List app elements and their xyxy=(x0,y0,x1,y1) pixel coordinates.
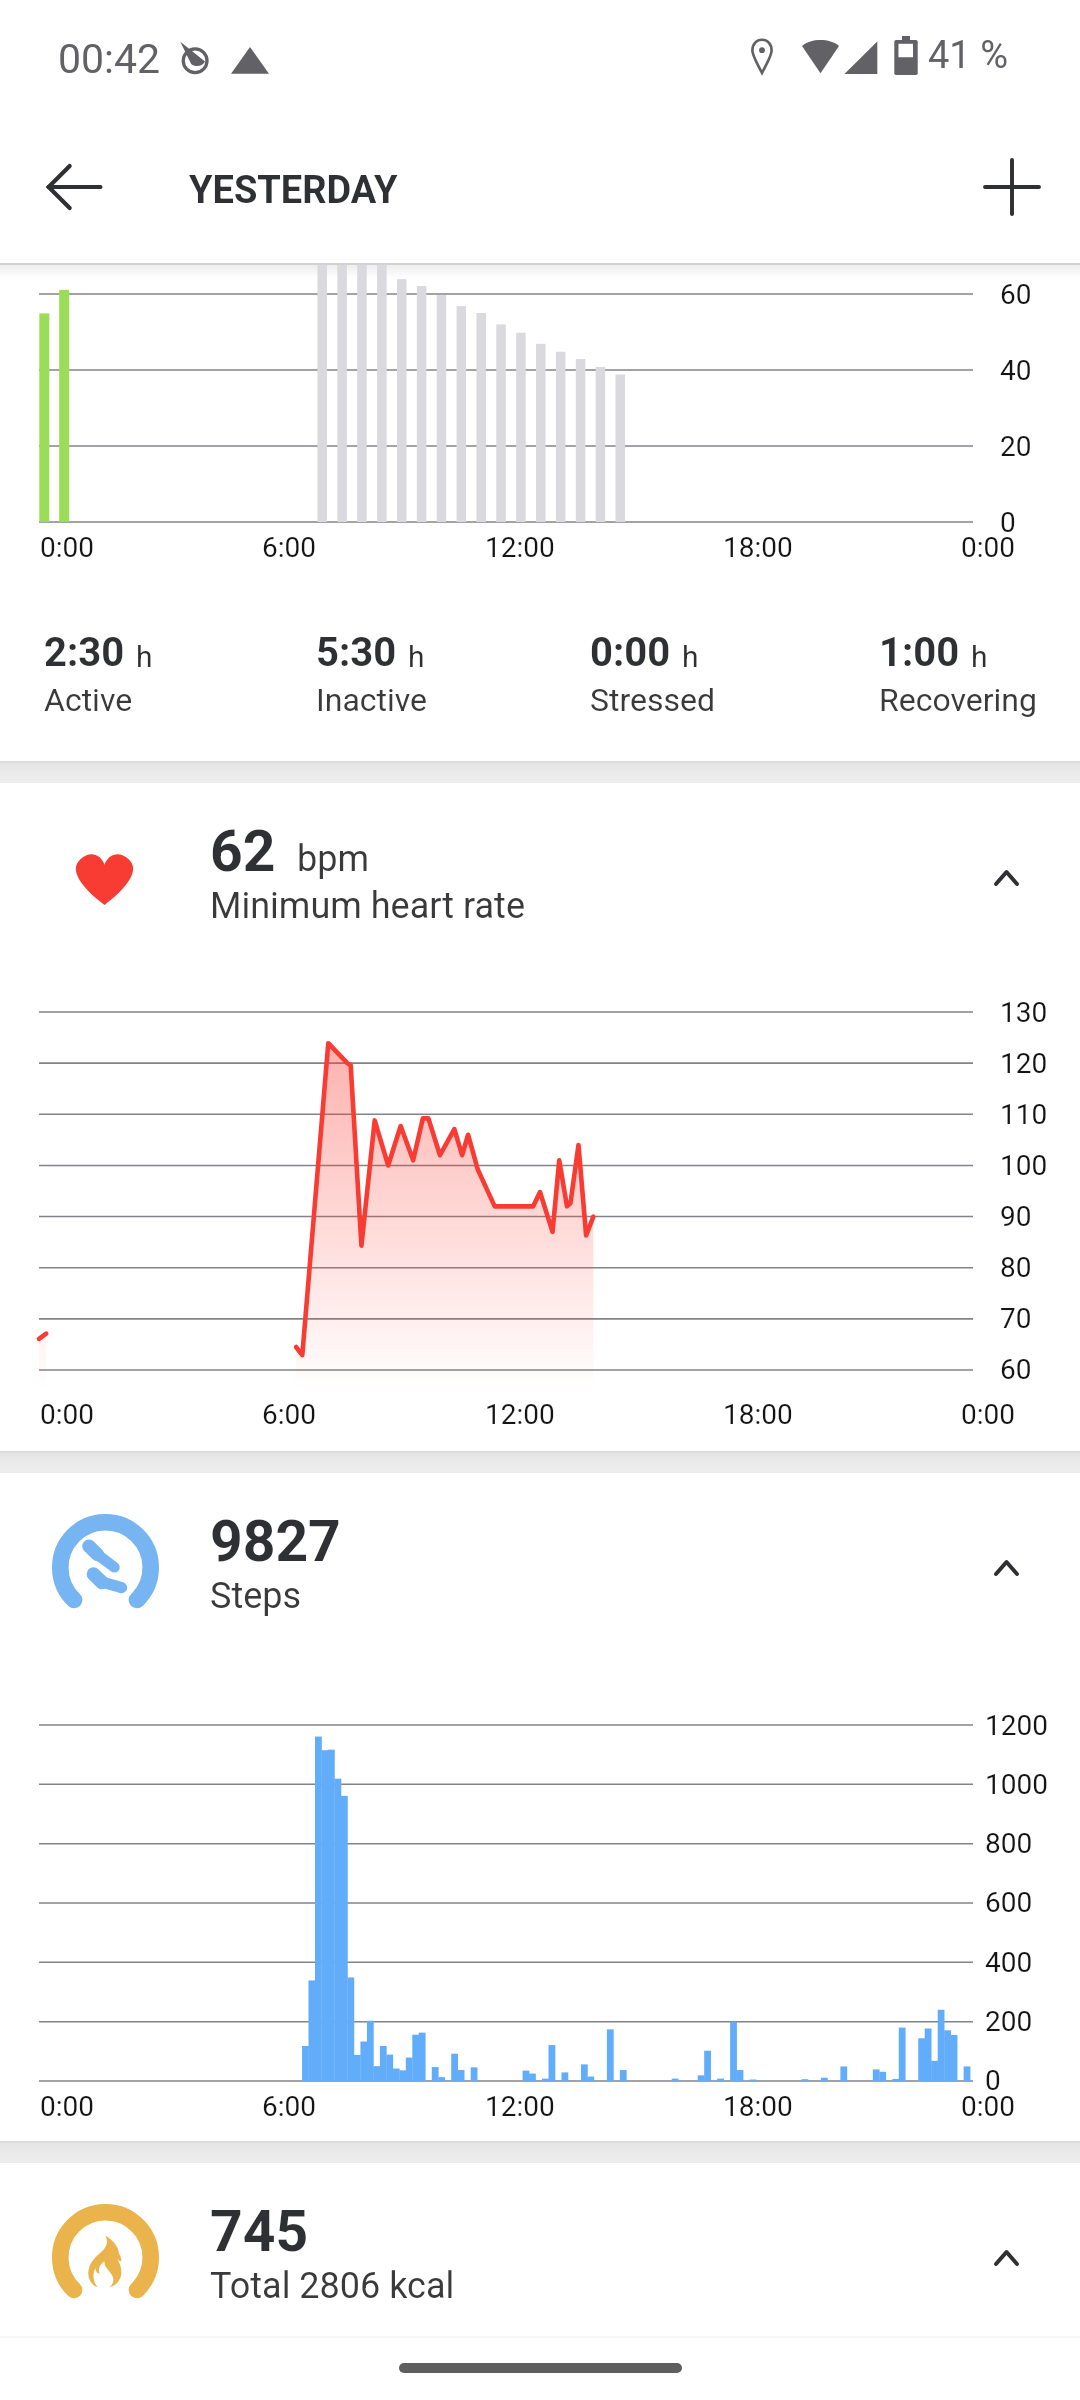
staticText: 120 xyxy=(1000,1047,1048,1080)
staticText: Steps xyxy=(210,1575,302,1617)
staticText: 600 xyxy=(985,1886,1033,1919)
staticText: 0:00 xyxy=(961,531,1015,564)
staticText: 200 xyxy=(985,2005,1033,2038)
staticText: 745 xyxy=(210,2198,309,2265)
staticText: Active xyxy=(44,681,133,719)
staticText: 1200 xyxy=(985,1709,1048,1742)
staticText: 18:00 xyxy=(723,531,793,564)
staticText: 100 xyxy=(1000,1149,1048,1182)
staticText: Recovering xyxy=(879,681,1037,719)
staticText: 2:30 xyxy=(44,629,125,676)
staticText: 70 xyxy=(1000,1302,1032,1335)
button[interactable]: 745 xyxy=(0,2163,1080,2323)
staticText: 400 xyxy=(985,1946,1033,1979)
staticText: h xyxy=(971,639,988,674)
button[interactable]: 62 xyxy=(0,783,1080,943)
staticText: 60 xyxy=(1000,278,1032,311)
staticText: 6:00 xyxy=(262,1398,316,1431)
staticText: 20 xyxy=(1000,430,1032,463)
staticText: YESTERDAY xyxy=(189,168,398,213)
staticText: 0:00 xyxy=(40,1398,94,1431)
staticText: 0:00 xyxy=(961,1398,1015,1431)
staticText: 110 xyxy=(1000,1098,1048,1131)
staticText: 41 % xyxy=(928,33,1008,78)
staticText: 0 xyxy=(985,2064,1001,2097)
staticText: 130 xyxy=(1000,996,1048,1029)
staticText: 62 xyxy=(210,818,276,885)
staticText: Stressed xyxy=(590,681,716,719)
staticText: 0 xyxy=(1000,506,1016,539)
button[interactable]: 9827 xyxy=(0,1473,1080,1633)
button[interactable]: 0:00 xyxy=(590,629,716,719)
button[interactable]: Back xyxy=(22,135,126,239)
staticText: 80 xyxy=(1000,1251,1032,1284)
button[interactable]: Collapse xyxy=(962,2215,1052,2287)
staticText: 12:00 xyxy=(485,531,555,564)
staticText: 0:00 xyxy=(590,629,671,676)
staticText: 60 xyxy=(1000,1353,1032,1386)
staticText: h xyxy=(136,639,153,674)
staticText: 18:00 xyxy=(723,2090,793,2123)
staticText: 40 xyxy=(1000,354,1032,387)
staticText: 9827 xyxy=(210,1508,341,1575)
staticText: Inactive xyxy=(316,681,428,719)
button[interactable]: 1:00 xyxy=(879,629,1037,719)
staticText: 1:00 xyxy=(879,629,960,676)
staticText: 800 xyxy=(985,1827,1033,1860)
button[interactable]: Collapse xyxy=(962,835,1052,907)
staticText: 00:42 xyxy=(58,35,161,83)
staticText: 12:00 xyxy=(485,1398,555,1431)
staticText: h xyxy=(408,639,425,674)
staticText: 0:00 xyxy=(40,2090,94,2123)
staticText: 12:00 xyxy=(485,2090,555,2123)
staticText: 0:00 xyxy=(961,2090,1015,2123)
staticText: 6:00 xyxy=(262,531,316,564)
staticText: 0:00 xyxy=(40,531,94,564)
staticText: 18:00 xyxy=(723,1398,793,1431)
staticText: Minimum heart rate xyxy=(210,885,525,927)
button[interactable]: 2:30 xyxy=(44,629,153,719)
staticText: 90 xyxy=(1000,1200,1032,1233)
staticText: h xyxy=(682,639,699,674)
staticText: 1000 xyxy=(985,1768,1048,1801)
staticText: 6:00 xyxy=(262,2090,316,2123)
button[interactable]: 5:30 xyxy=(316,629,428,719)
staticText: bpm xyxy=(297,838,369,880)
staticText: Total 2806 kcal xyxy=(210,2265,455,2307)
staticText: 5:30 xyxy=(316,629,397,676)
button[interactable]: Add xyxy=(960,135,1064,239)
button[interactable]: Collapse xyxy=(962,1525,1052,1597)
